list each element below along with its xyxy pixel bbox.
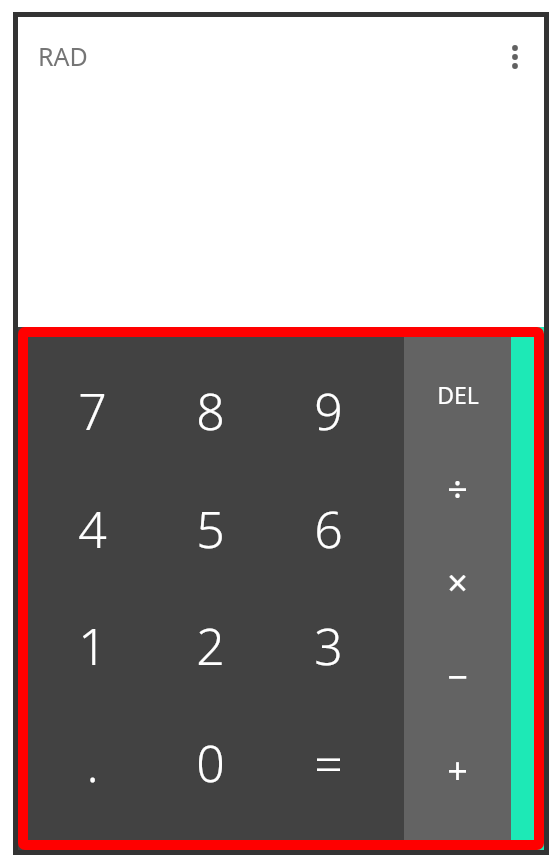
staticText: 0 — [196, 729, 225, 797]
button[interactable]: More options — [491, 33, 539, 81]
staticText: . — [86, 729, 99, 797]
staticText: 5 — [196, 495, 225, 563]
staticText: 9 — [314, 377, 343, 445]
button[interactable]: Nine — [269, 352, 387, 470]
staticText: 2 — [196, 612, 225, 680]
staticText: 3 — [314, 612, 343, 680]
staticText: + — [447, 746, 468, 795]
button[interactable]: Equals — [269, 704, 387, 821]
button[interactable]: Delete — [404, 348, 511, 441]
button[interactable]: Five — [151, 470, 269, 587]
button[interactable]: Three — [269, 587, 387, 704]
button[interactable]: Point — [33, 704, 151, 821]
button[interactable]: Divide — [404, 441, 511, 535]
button[interactable]: Minus — [404, 629, 511, 723]
staticText: 6 — [314, 495, 343, 563]
button[interactable]: Six — [269, 470, 387, 587]
staticText: − — [447, 652, 468, 701]
staticText: RAD — [38, 39, 88, 73]
staticText: = — [314, 729, 343, 797]
staticText: 1 — [78, 612, 107, 680]
button[interactable]: Two — [151, 587, 269, 704]
button[interactable]: Four — [33, 470, 151, 587]
staticText: 7 — [78, 377, 107, 445]
button[interactable]: Eight — [151, 352, 269, 470]
button[interactable]: Multiply — [404, 535, 511, 629]
button[interactable]: Open advanced pad — [511, 327, 544, 850]
staticText: DEL — [437, 379, 479, 410]
button[interactable]: Plus — [404, 723, 511, 817]
staticText: ÷ — [447, 464, 468, 513]
staticText: 8 — [196, 377, 225, 445]
button[interactable]: Zero — [151, 704, 269, 821]
button[interactable]: One — [33, 587, 151, 704]
staticText: × — [447, 558, 468, 607]
button[interactable]: RAD — [38, 39, 88, 73]
staticText: 4 — [78, 495, 107, 563]
button[interactable]: Seven — [33, 352, 151, 470]
